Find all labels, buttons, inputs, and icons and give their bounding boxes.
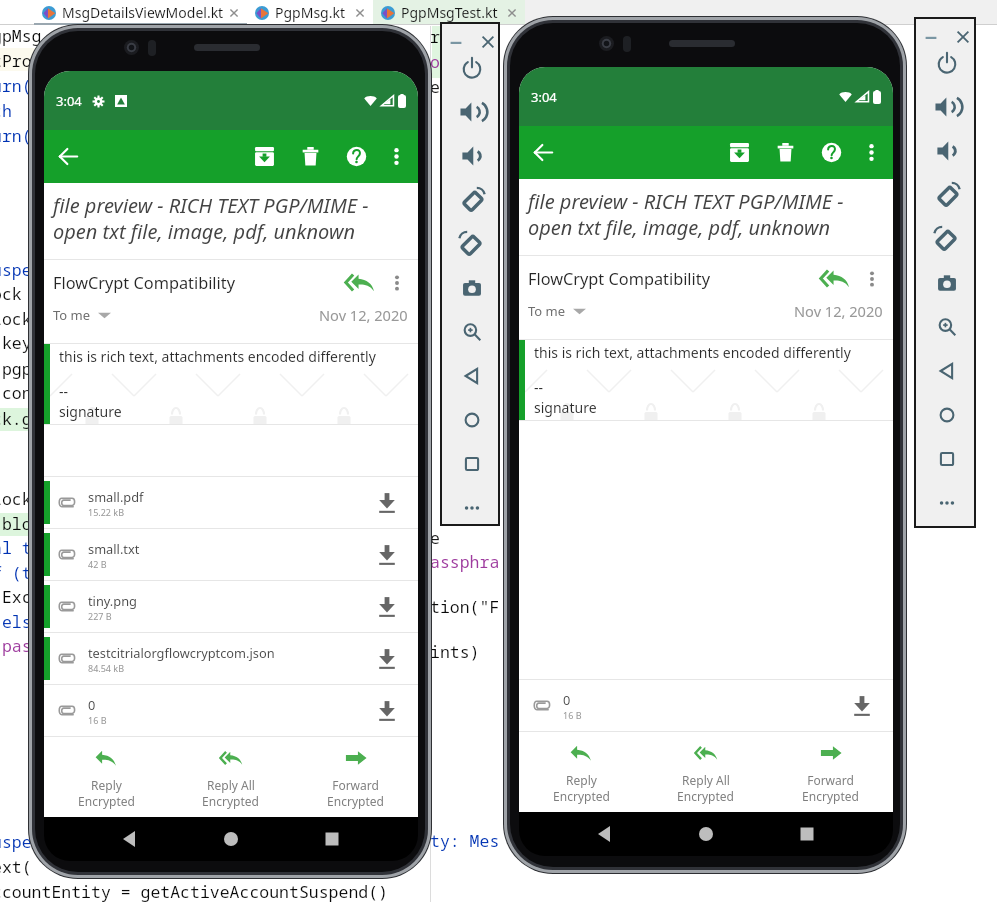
button[interactable]: Archive: [726, 139, 753, 166]
staticText: this is rich text, attachments encoded d…: [59, 347, 376, 366]
button[interactable]: Delete: [772, 139, 799, 166]
staticText: --: [534, 378, 544, 397]
button[interactable]: 0: [519, 680, 893, 731]
staticText: 15.22 kB: [88, 506, 125, 518]
staticText: Encrypted: [78, 793, 135, 809]
staticText: Exc: [0, 585, 32, 607]
staticText: ccountEntity = getActiveAccountSuspend(): [0, 880, 388, 902]
button[interactable]: 0: [44, 685, 418, 736]
button[interactable]: Rotate right: [931, 223, 963, 255]
button[interactable]: Close: [954, 28, 972, 46]
button[interactable]: Rotate right: [456, 228, 488, 260]
button[interactable]: Reply: [519, 732, 643, 812]
button[interactable]: Home: [931, 399, 963, 431]
button[interactable]: Overview: [456, 448, 488, 480]
staticText: Reply All: [682, 772, 730, 788]
button[interactable]: Rotate left: [931, 179, 963, 211]
staticText: ints): [430, 640, 480, 662]
button[interactable]: Back: [456, 360, 488, 392]
button[interactable]: testcitrialorgflowcryptcom.json: [44, 633, 418, 684]
staticText: small.pdf: [88, 488, 144, 505]
button[interactable]: Reply all: [819, 263, 850, 294]
staticText: this is rich text, attachments encoded d…: [534, 343, 851, 362]
button[interactable]: Forward: [293, 737, 418, 817]
button[interactable]: Back: [54, 142, 83, 171]
button[interactable]: Download tiny.png: [372, 592, 402, 622]
button[interactable]: Rotate left: [456, 184, 488, 216]
button[interactable]: Forward: [768, 732, 893, 812]
button[interactable]: Volume up: [456, 96, 488, 128]
button[interactable]: PgpMsg.kt: [247, 0, 373, 25]
staticText: tion("F: [430, 595, 500, 617]
button[interactable]: More options: [858, 139, 885, 166]
button[interactable]: Reply All: [643, 732, 768, 812]
button[interactable]: Screenshot: [456, 272, 488, 304]
button[interactable]: Help: [818, 139, 845, 166]
staticText: Encrypted: [677, 788, 734, 804]
button[interactable]: Home: [691, 819, 721, 849]
staticText: Lock: [0, 307, 32, 329]
button[interactable]: Zoom: [931, 311, 963, 343]
button[interactable]: Download testcitrialorgflowcryptcom.json: [372, 644, 402, 674]
button[interactable]: Power: [931, 47, 963, 79]
staticText: Reply: [91, 777, 122, 793]
staticText: pgp: [0, 357, 32, 379]
button[interactable]: small.pdf: [44, 477, 418, 528]
staticText: FlowCrypt Compatibility: [53, 272, 235, 294]
button[interactable]: MsgDetailsViewModel.kt: [34, 0, 247, 25]
button[interactable]: More: [385, 271, 409, 295]
button[interactable]: More options: [383, 143, 410, 170]
button[interactable]: Back: [590, 819, 620, 849]
button[interactable]: Download small.txt: [372, 540, 402, 570]
button[interactable]: [0, 0, 34, 25]
button[interactable]: Download 0: [847, 691, 877, 721]
button[interactable]: Reply All: [168, 737, 293, 817]
staticText: uspe: [0, 258, 32, 280]
button[interactable]: Download small.pdf: [372, 488, 402, 518]
button[interactable]: Archive: [251, 143, 278, 170]
button[interactable]: tiny.png: [44, 581, 418, 632]
button[interactable]: Volume down: [456, 140, 488, 172]
button[interactable]: PgpMsgTest.kt: [373, 0, 525, 25]
button[interactable]: More: [456, 492, 488, 524]
button[interactable]: Back: [931, 355, 963, 387]
staticText: signature: [59, 402, 122, 421]
staticText: FlowCrypt Compatibility: [528, 268, 710, 290]
staticText: 42 B: [88, 558, 107, 570]
staticText: 84.54 kB: [88, 662, 125, 674]
staticText: Reply All: [207, 777, 255, 793]
staticText: To me: [528, 302, 566, 320]
button[interactable]: More: [860, 267, 884, 291]
button[interactable]: Power: [456, 52, 488, 84]
staticText: tiny.png: [88, 592, 137, 609]
staticText: els: [0, 610, 32, 632]
button[interactable]: Close: [479, 33, 497, 51]
button[interactable]: Zoom: [456, 316, 488, 348]
button[interactable]: More: [931, 487, 963, 519]
button[interactable]: Overview: [792, 819, 822, 849]
button[interactable]: Screenshot: [931, 267, 963, 299]
button[interactable]: Home: [216, 824, 246, 854]
staticText: 16 B: [563, 709, 582, 721]
staticText: signature: [534, 398, 597, 417]
staticText: small.txt: [88, 540, 140, 557]
button[interactable]: Minimize: [447, 33, 465, 51]
staticText: e: [430, 526, 440, 548]
button[interactable]: Minimize: [922, 28, 940, 46]
staticText: con: [0, 381, 32, 403]
button[interactable]: Reply all: [344, 267, 375, 298]
button[interactable]: small.txt: [44, 529, 418, 580]
button[interactable]: Help: [343, 143, 370, 170]
button[interactable]: Download 0: [372, 696, 402, 726]
button[interactable]: Home: [456, 404, 488, 436]
staticText: ty: Mes: [430, 829, 500, 851]
button[interactable]: Reply: [44, 737, 168, 817]
button[interactable]: Overview: [931, 443, 963, 475]
button[interactable]: Volume down: [931, 135, 963, 167]
button[interactable]: Back: [115, 824, 145, 854]
button[interactable]: Overview: [317, 824, 347, 854]
button[interactable]: Back: [529, 138, 558, 167]
button[interactable]: Volume up: [931, 91, 963, 123]
staticText: Forward: [807, 772, 854, 788]
button[interactable]: Delete: [297, 143, 324, 170]
